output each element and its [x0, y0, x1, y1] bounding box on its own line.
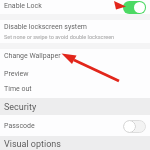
staticText: Set none or swipe to avoid double locksc…	[4, 34, 115, 40]
button[interactable]: Preview	[0, 66, 150, 81]
staticText: Visual options	[4, 139, 61, 150]
staticText: Time out	[4, 85, 32, 93]
staticText: Change Wallpaper	[4, 52, 61, 60]
button[interactable]	[123, 120, 146, 133]
staticText: Enable Lock	[4, 2, 123, 10]
button[interactable]: Disable lockscreen system	[0, 20, 150, 43]
button[interactable]	[123, 1, 146, 14]
button[interactable]: Change Wallpaper	[0, 49, 150, 66]
staticText: Disable lockscreen system	[4, 23, 87, 31]
staticText: Passcode	[4, 122, 123, 130]
button[interactable]: Time out	[0, 81, 150, 98]
button[interactable]: Passcode	[0, 115, 150, 135]
staticText: Security	[4, 102, 37, 113]
staticText: Preview	[4, 70, 29, 78]
button[interactable]: Enable Lock	[0, 0, 150, 14]
